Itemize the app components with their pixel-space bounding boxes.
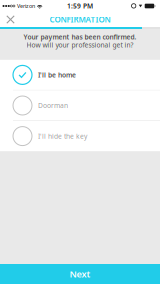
button[interactable]: I'll be home: [0, 60, 160, 90]
button[interactable]: I'll hide the key: [0, 121, 160, 151]
staticText: Doorman: [38, 101, 68, 110]
staticText: CONFIRMATION: [49, 14, 110, 25]
button[interactable]: Next: [0, 264, 160, 284]
staticText: Verizon: [17, 2, 35, 10]
staticText: I'll be home: [38, 70, 76, 79]
staticText: I'll hide the key: [38, 132, 87, 141]
button[interactable]: Doorman: [0, 90, 160, 120]
staticText: Your payment has been confirmed.: [23, 33, 136, 41]
staticText: How will your professional get in?: [26, 41, 133, 49]
staticText: 1:59 PM: [67, 2, 93, 10]
button[interactable]: Close: [0, 12, 21, 26]
staticText: Next: [69, 268, 90, 280]
